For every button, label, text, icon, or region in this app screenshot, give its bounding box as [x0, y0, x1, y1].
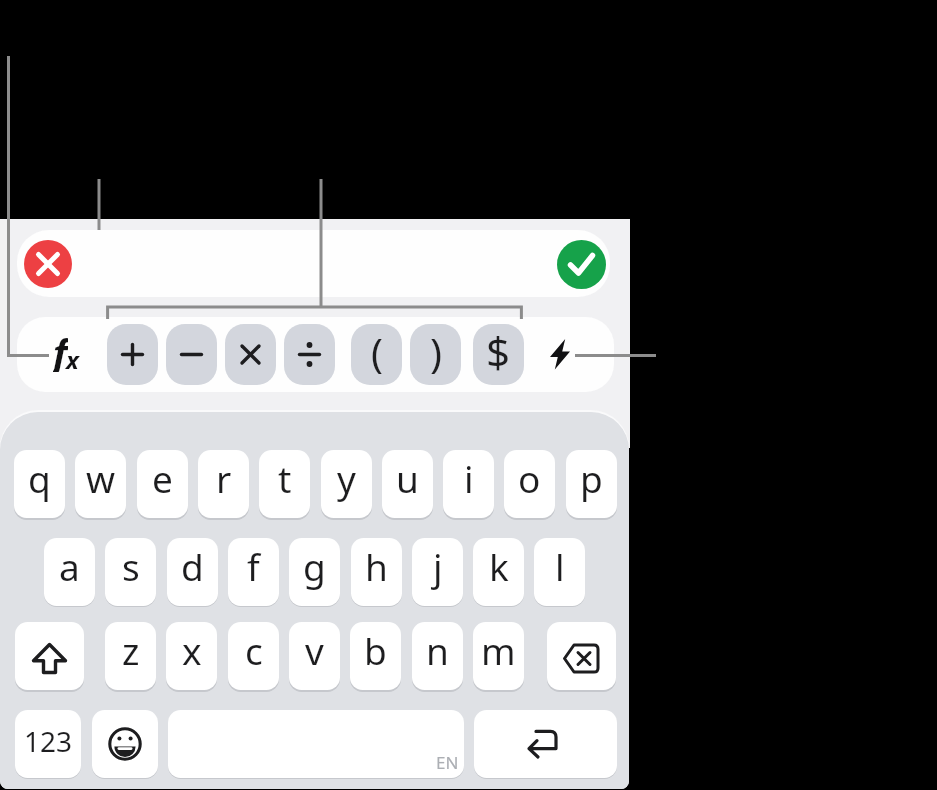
staticText: f	[247, 541, 260, 591]
button[interactable]: k	[473, 538, 524, 606]
button[interactable]: 123	[15, 710, 81, 778]
button[interactable]: p	[566, 450, 617, 518]
staticText: v	[305, 625, 324, 675]
staticText: s	[122, 541, 140, 591]
staticText: t	[278, 453, 292, 503]
button[interactable]: h	[351, 538, 402, 606]
button[interactable]: c	[228, 622, 279, 690]
button[interactable]: a	[44, 538, 95, 606]
button[interactable]: n	[412, 622, 463, 690]
button[interactable]: d	[167, 538, 218, 606]
staticText: f	[53, 326, 68, 372]
staticText: j	[433, 541, 443, 591]
button[interactable]: j	[412, 538, 463, 606]
button[interactable]: w	[75, 450, 126, 518]
button[interactable]: v	[289, 622, 340, 690]
button[interactable]	[225, 324, 276, 385]
button[interactable]	[540, 334, 580, 374]
staticText: 123	[24, 722, 73, 760]
button[interactable]: f	[49, 326, 89, 372]
staticText: r	[216, 453, 232, 503]
staticText: o	[518, 453, 541, 503]
staticText: b	[364, 625, 387, 675]
staticText: y	[337, 453, 356, 503]
button[interactable]: z	[105, 622, 156, 690]
staticText: x	[66, 343, 79, 376]
staticText: i	[464, 453, 474, 503]
staticText: x	[182, 625, 202, 675]
staticText: n	[426, 625, 449, 675]
button[interactable]: q	[14, 450, 65, 518]
staticText: u	[396, 453, 419, 503]
button[interactable]	[107, 324, 158, 385]
button[interactable]: )	[410, 324, 461, 385]
button[interactable]: r	[198, 450, 249, 518]
button[interactable]	[15, 622, 84, 690]
button[interactable]: $	[473, 324, 524, 385]
staticText: p	[580, 453, 603, 503]
button[interactable]: y	[321, 450, 372, 518]
button[interactable]: t	[259, 450, 310, 518]
staticText: EN	[436, 751, 459, 774]
button[interactable]: x	[166, 622, 217, 690]
staticText: c	[245, 625, 263, 675]
button[interactable]: g	[289, 538, 340, 606]
staticText: q	[28, 453, 51, 503]
button[interactable]: l	[534, 538, 585, 606]
staticText: g	[303, 541, 326, 591]
staticText: a	[59, 541, 80, 591]
button[interactable]: o	[504, 450, 555, 518]
button[interactable]: s	[105, 538, 156, 606]
button[interactable]	[24, 240, 72, 288]
button[interactable]	[166, 324, 217, 385]
staticText: )	[430, 325, 442, 379]
button[interactable]	[168, 710, 464, 778]
staticText: z	[122, 625, 140, 675]
button[interactable]: e	[137, 450, 188, 518]
button[interactable]	[17, 230, 610, 297]
button[interactable]: (	[351, 324, 402, 385]
button[interactable]: b	[350, 622, 401, 690]
staticText: h	[365, 541, 388, 591]
button[interactable]	[284, 324, 335, 385]
staticText: d	[181, 541, 204, 591]
staticText: m	[481, 625, 516, 675]
staticText: e	[152, 453, 173, 503]
staticText: (	[371, 325, 383, 379]
staticText: l	[555, 541, 565, 591]
button[interactable]	[474, 710, 617, 778]
button[interactable]: i	[443, 450, 494, 518]
button[interactable]: m	[473, 622, 524, 690]
button[interactable]	[557, 240, 606, 289]
button[interactable]: f	[228, 538, 279, 606]
button[interactable]: u	[382, 450, 433, 518]
button[interactable]	[547, 622, 616, 690]
button[interactable]	[92, 710, 158, 778]
staticText: k	[489, 541, 509, 591]
staticText: $	[486, 324, 511, 380]
staticText: w	[86, 453, 116, 503]
